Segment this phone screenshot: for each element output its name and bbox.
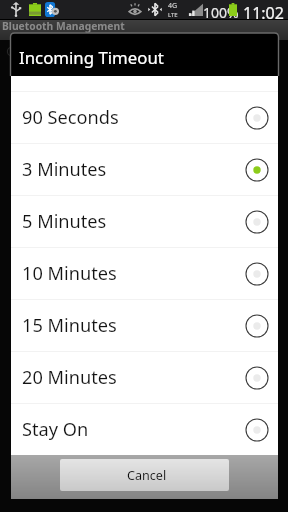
button[interactable]: Stay On: [11, 404, 278, 455]
staticText: 90 Seconds: [22, 105, 246, 130]
staticText: LTE: [168, 11, 178, 18]
staticText: 3 Minutes: [22, 157, 246, 182]
staticText: 15 Minutes: [22, 313, 246, 338]
button[interactable]: 90 Seconds: [11, 92, 278, 143]
button[interactable]: 10 Minutes: [11, 248, 278, 299]
staticText: Call Options: [6, 42, 80, 60]
staticText: Stay On: [22, 417, 246, 442]
staticText: 5 Minutes: [22, 209, 246, 234]
staticText: Bluetooth Management: [2, 19, 125, 33]
button[interactable]: 20 Minutes: [11, 352, 278, 403]
button[interactable]: 15 Minutes: [11, 300, 278, 351]
staticText: 100%: [203, 3, 239, 22]
button[interactable]: 3 Minutes: [11, 144, 278, 195]
staticText: 20 Minutes: [22, 365, 246, 390]
button[interactable]: Cancel: [60, 459, 229, 491]
staticText: Incoming Timeout: [19, 46, 164, 69]
button[interactable]: 5 Minutes: [11, 196, 278, 247]
staticText: 11:02: [243, 2, 284, 21]
staticText: Cancel: [127, 467, 167, 484]
staticText: 10 Minutes: [22, 261, 246, 286]
staticText: 4G: [168, 1, 178, 11]
